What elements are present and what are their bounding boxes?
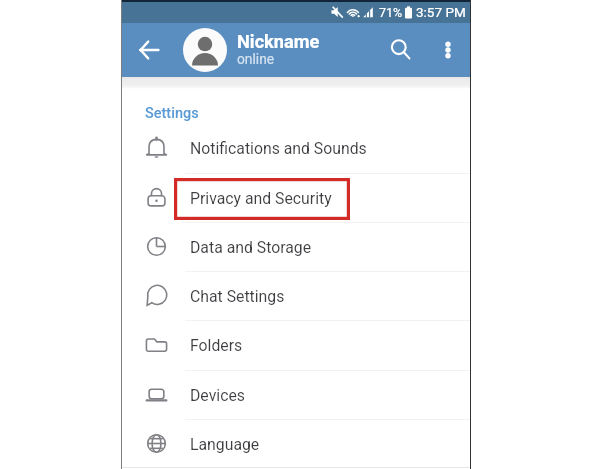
button[interactable]: Chat Settings [122,271,470,320]
staticText: Folders [190,336,243,355]
staticText: 3:57 PM [416,4,466,20]
button[interactable]: Data and Storage [122,222,470,271]
button[interactable]: Privacy and Security [122,173,470,222]
button[interactable]: Folders [122,320,470,369]
button[interactable]: Search [378,27,424,73]
button[interactable]: More options [425,27,470,72]
staticText: Devices [190,386,245,405]
staticText: Nickname [237,31,320,52]
button[interactable]: Back [126,27,172,73]
staticText: Notifications and Sounds [190,139,367,158]
staticText: Privacy and Security [190,189,332,208]
button[interactable]: Nickname [237,31,320,68]
staticText: Chat Settings [190,287,285,306]
staticText: 71% [379,5,403,20]
staticText: Language [190,435,260,454]
staticText: Data and Storage [190,238,312,257]
button[interactable]: Language [122,419,470,468]
staticText: Settings [145,105,199,122]
button[interactable]: Notifications and Sounds [122,123,470,172]
staticText: online [237,51,275,67]
button[interactable]: Devices [122,370,470,419]
